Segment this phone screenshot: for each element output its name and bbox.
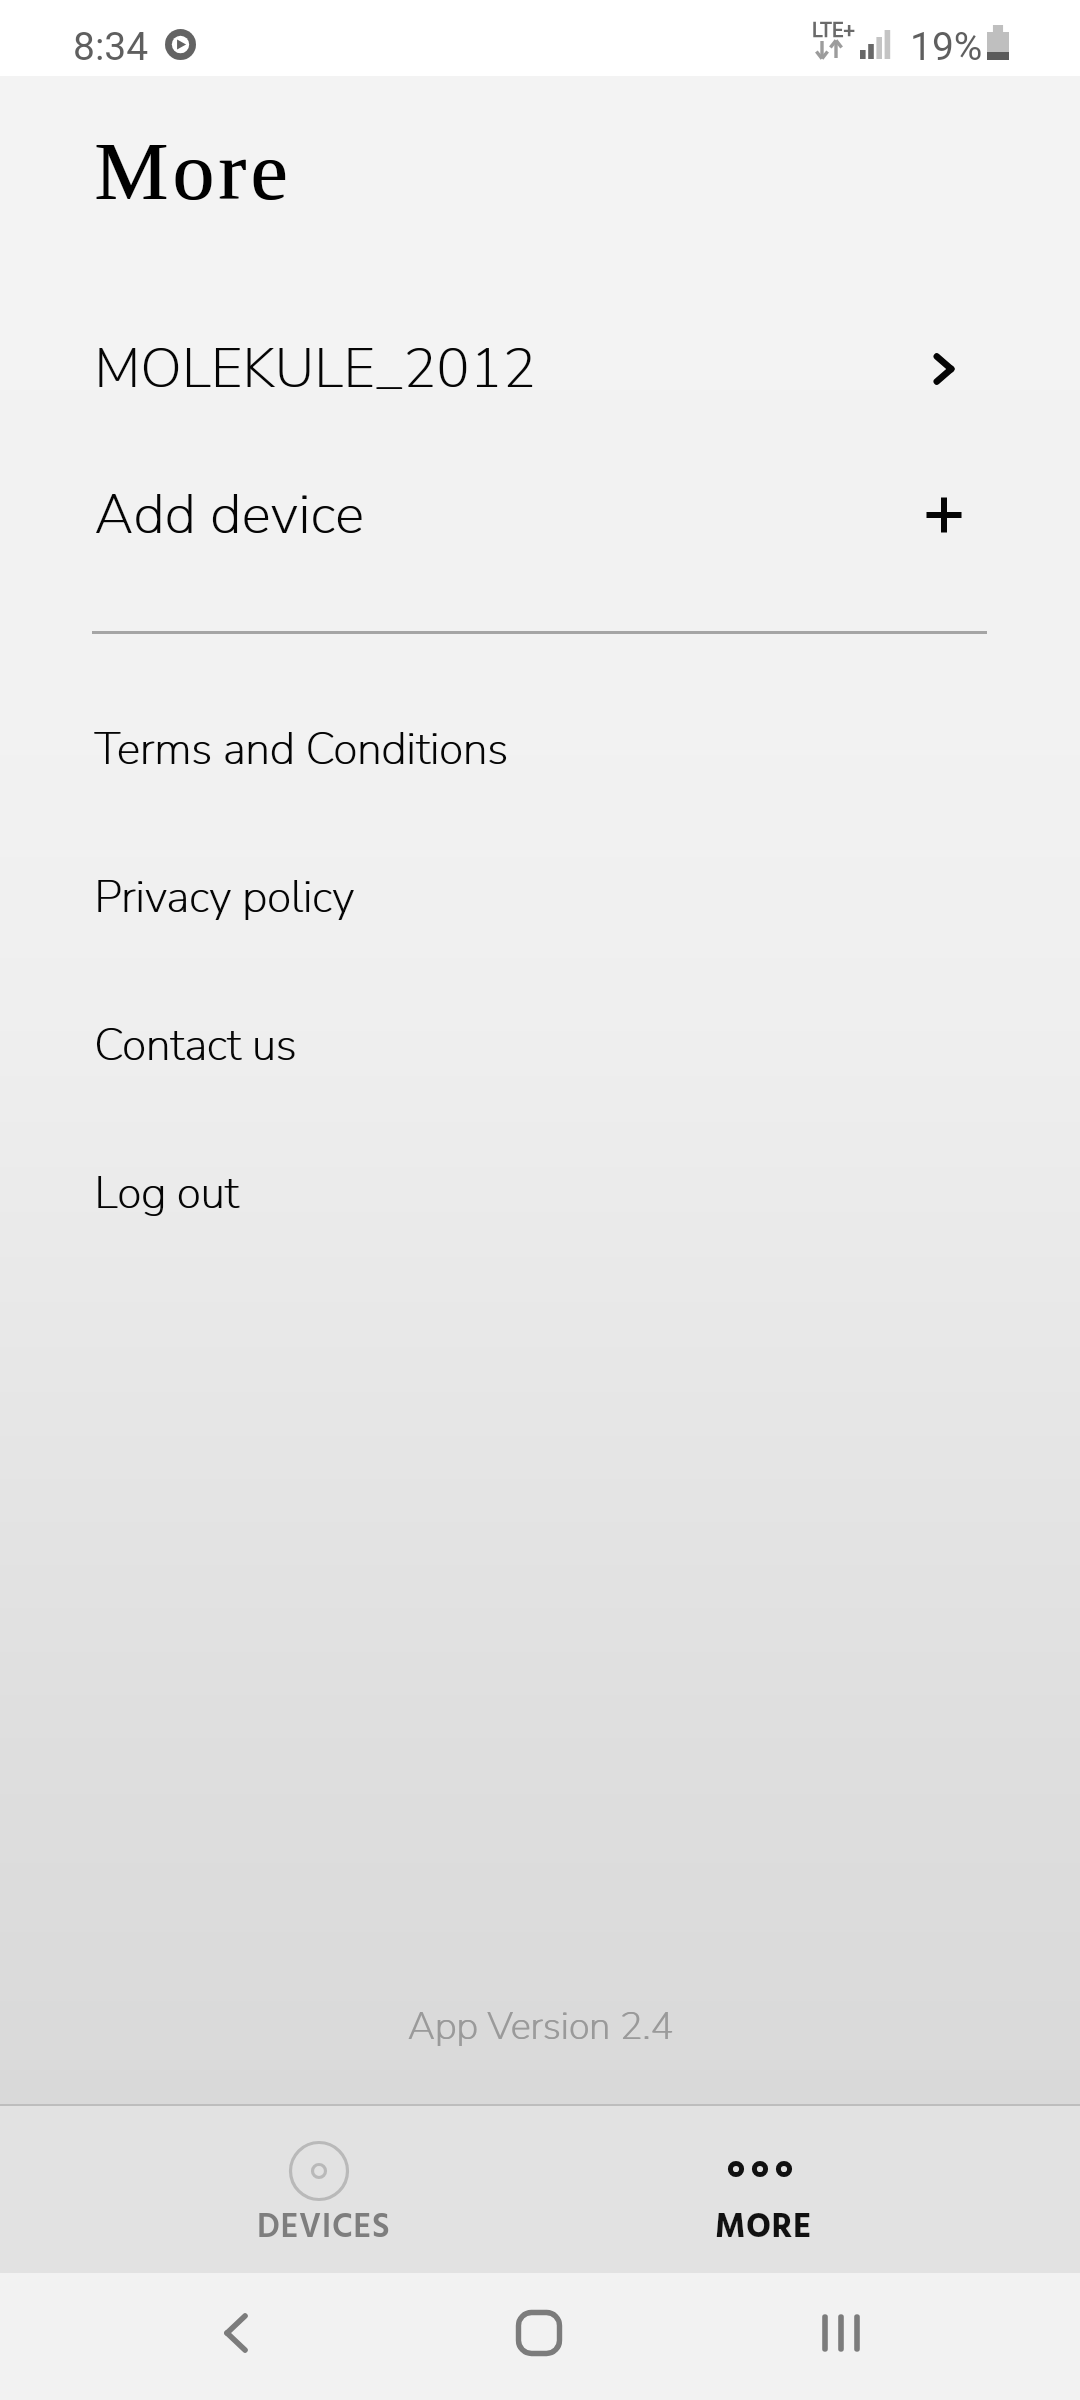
staticText: Terms and Conditions [94,720,508,780]
staticText: LTE+ [812,18,855,41]
button[interactable]: MOLEKULE_2012 [0,296,1080,442]
staticText: More [94,125,292,217]
button[interactable]: Privacy policy [0,824,1080,972]
staticText: MORE [715,2201,813,2255]
staticText: Privacy policy [94,868,355,928]
staticText: Log out [94,1164,239,1224]
button[interactable]: DEVICES [104,2106,544,2273]
button[interactable]: Contact us [0,972,1080,1120]
staticText: MOLEKULE_2012 [94,332,536,406]
staticText: DEVICES [257,2201,391,2255]
button[interactable]: Recent apps [796,2288,886,2378]
button[interactable]: MORE [544,2106,984,2273]
staticText: 8:34 [73,24,149,70]
staticText: Contact us [94,1016,297,1076]
button[interactable]: Back [191,2288,281,2378]
staticText: Add device [94,478,365,552]
button[interactable]: Add device [0,442,1080,588]
button[interactable]: Home [494,2288,584,2378]
staticText: 19% [910,24,983,70]
button[interactable]: Terms and Conditions [0,676,1080,824]
staticText: App Version 2.4 [0,2001,1080,2053]
button[interactable]: Log out [0,1120,1080,1268]
